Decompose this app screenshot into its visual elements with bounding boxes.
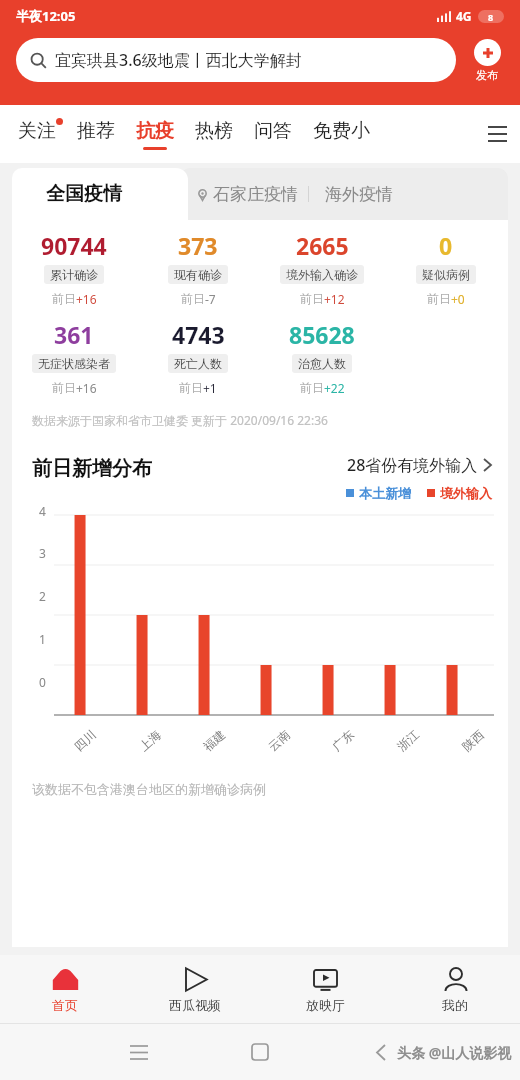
- staticText: 疑似病例: [422, 267, 470, 282]
- staticText: 28省份有境外输入: [347, 454, 478, 476]
- staticText: 373: [178, 230, 218, 261]
- button[interactable]: 推荐: [77, 119, 115, 150]
- staticText: 石家庄疫情: [213, 184, 298, 205]
- staticText: +16: [76, 380, 97, 396]
- staticText: 前日: [52, 291, 76, 306]
- staticText: 85628: [289, 319, 355, 350]
- staticText: 现有确诊: [174, 267, 222, 282]
- staticText: 前日: [300, 291, 324, 306]
- staticText: 2: [39, 588, 46, 604]
- staticText: 90744: [41, 230, 107, 261]
- button[interactable]: 90744: [12, 230, 136, 307]
- staticText: 陕西: [459, 727, 487, 754]
- staticText: 治愈人数: [298, 356, 346, 371]
- staticText: 数据来源于国家和省市卫健委 更新于 2020/09/16 22:36: [32, 412, 328, 428]
- button[interactable]: 关注: [18, 119, 56, 150]
- button[interactable]: 首页: [0, 955, 130, 1023]
- staticText: 1: [39, 631, 46, 647]
- staticText: 0: [439, 230, 453, 261]
- staticText: 上海: [136, 727, 164, 754]
- staticText: 死亡人数: [174, 356, 222, 371]
- button[interactable]: Home: [238, 1030, 282, 1074]
- button[interactable]: 热榜: [195, 119, 233, 150]
- staticText: +12: [324, 291, 345, 307]
- staticText: 热榜: [195, 119, 233, 143]
- button[interactable]: 4743: [136, 319, 260, 396]
- button[interactable]: 石家庄疫情: [180, 184, 298, 205]
- button[interactable]: 373: [136, 230, 260, 307]
- button[interactable]: 85628: [260, 319, 384, 396]
- button[interactable]: 放映厅: [260, 955, 390, 1023]
- staticText: 免费小: [313, 119, 370, 143]
- staticText: 境外输入: [440, 485, 492, 501]
- staticText: 头条 @山人说影视: [397, 1043, 512, 1062]
- staticText: 前日: [300, 380, 324, 395]
- staticText: 2665: [296, 230, 349, 261]
- staticText: 本土新增: [359, 485, 411, 501]
- staticText: +16: [76, 291, 97, 307]
- button[interactable]: 西瓜视频: [130, 955, 260, 1023]
- staticText: 前日新增分布: [32, 456, 152, 481]
- staticText: +22: [324, 380, 345, 396]
- staticText: 361: [54, 319, 94, 350]
- button[interactable]: 28省份有境外输入: [347, 454, 492, 476]
- staticText: 前日: [179, 380, 203, 395]
- staticText: -7: [205, 291, 216, 307]
- staticText: 4G: [456, 8, 472, 24]
- staticText: 该数据不包含港澳台地区的新增确诊病例: [32, 781, 266, 797]
- staticText: 3: [39, 545, 46, 561]
- staticText: 推荐: [77, 119, 115, 143]
- staticText: 前日: [427, 291, 451, 306]
- staticText: 西瓜视频: [169, 997, 221, 1013]
- staticText: 福建: [200, 727, 228, 754]
- staticText: 4: [39, 503, 46, 519]
- staticText: 宜宾珙县3.6级地震丨西北大学解封: [55, 49, 302, 71]
- button[interactable]: 抗疫: [136, 119, 174, 150]
- staticText: 首页: [52, 997, 78, 1013]
- button[interactable]: 2665: [260, 230, 384, 307]
- staticText: +0: [451, 291, 465, 307]
- button[interactable]: 我的: [390, 955, 520, 1023]
- staticText: 无症状感染者: [38, 356, 110, 371]
- staticText: 前日: [52, 380, 76, 395]
- button[interactable]: Back: [359, 1030, 403, 1074]
- button[interactable]: 海外疫情: [325, 184, 393, 205]
- staticText: 云南: [265, 727, 293, 754]
- staticText: 半夜12:05: [16, 7, 76, 25]
- staticText: 前日: [181, 291, 205, 306]
- staticText: 全国疫情: [46, 182, 122, 206]
- staticText: 问答: [254, 119, 292, 143]
- staticText: 发布: [476, 68, 498, 82]
- button[interactable]: Recents: [117, 1030, 161, 1074]
- staticText: 四川: [71, 727, 99, 754]
- staticText: 0: [39, 674, 46, 690]
- staticText: 4743: [172, 319, 225, 350]
- button[interactable]: 0: [384, 230, 508, 307]
- staticText: 浙江: [394, 727, 422, 754]
- staticText: 累计确诊: [50, 267, 98, 282]
- button[interactable]: 全国疫情: [12, 168, 188, 220]
- button[interactable]: 免费小: [313, 119, 370, 150]
- button[interactable]: 发布: [464, 39, 510, 82]
- staticText: 8: [488, 11, 494, 23]
- staticText: 关注: [18, 119, 56, 143]
- staticText: 境外输入确诊: [286, 267, 358, 282]
- button[interactable]: 宜宾珙县3.6级地震丨西北大学解封: [16, 38, 456, 82]
- staticText: 广东: [329, 727, 357, 754]
- staticText: 抗疫: [136, 119, 174, 143]
- staticText: 放映厅: [306, 997, 345, 1013]
- staticText: +1: [203, 380, 217, 396]
- staticText: 我的: [442, 997, 468, 1013]
- button[interactable]: 菜单: [482, 119, 512, 149]
- button[interactable]: 361: [12, 319, 136, 396]
- button[interactable]: 问答: [254, 119, 292, 150]
